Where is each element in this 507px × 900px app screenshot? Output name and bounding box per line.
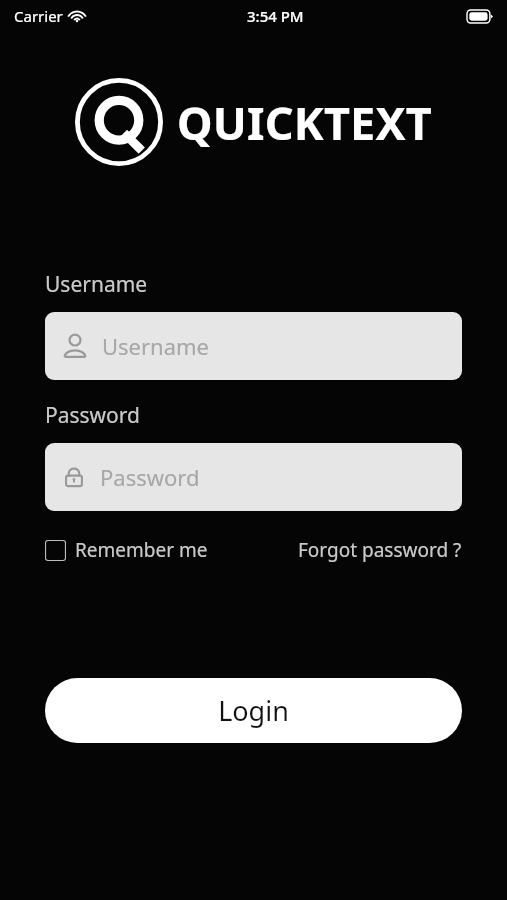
staticText: Username <box>45 270 148 299</box>
staticText: Forgot password ? <box>298 537 462 563</box>
staticText: Remember me <box>75 537 208 563</box>
button[interactable]: Forgot password ? <box>298 533 462 567</box>
button[interactable]: Password <box>45 443 462 511</box>
staticText: Username <box>102 331 210 361</box>
staticText: Password <box>100 462 200 492</box>
staticText: QUICKTEXT <box>177 92 432 153</box>
button[interactable]: Remember me <box>45 533 208 567</box>
staticText: Password <box>45 401 140 430</box>
other: Wi-Fi <box>69 10 85 22</box>
button[interactable]: Login <box>45 678 462 743</box>
button[interactable]: Username <box>45 312 462 380</box>
other: Battery <box>467 10 493 23</box>
staticText: 3:54 PM <box>247 6 304 26</box>
staticText: Carrier <box>14 6 63 26</box>
staticText: Login <box>218 692 289 729</box>
other: QuickText logo <box>75 78 163 166</box>
